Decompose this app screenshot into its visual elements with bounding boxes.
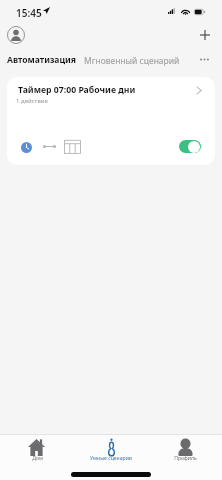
button[interactable]: Автоматизация [7, 54, 77, 66]
staticText: Профиль [174, 455, 197, 462]
button[interactable]: Account [7, 26, 25, 44]
button[interactable]: More options [196, 51, 212, 67]
button[interactable]: Toggle scenario [179, 140, 201, 153]
button[interactable]: Таймер 07:00 Рабочие дни [7, 77, 215, 165]
button[interactable]: Add [196, 26, 214, 44]
button[interactable]: Дом [0, 435, 74, 464]
staticText: Умные сценарии [90, 455, 132, 462]
button[interactable]: Мгновенный сценарий [84, 55, 180, 67]
button[interactable]: Умные сценарии [74, 435, 148, 464]
staticText: Таймер 07:00 Рабочие дни [18, 84, 136, 96]
staticText: Мгновенный сценарий [84, 55, 180, 67]
staticText: 15:45 [16, 6, 42, 20]
staticText: Дом [32, 455, 43, 462]
staticText: Автоматизация [7, 54, 77, 66]
button[interactable]: Профиль [148, 435, 222, 464]
staticText: 1 действие [16, 97, 48, 105]
